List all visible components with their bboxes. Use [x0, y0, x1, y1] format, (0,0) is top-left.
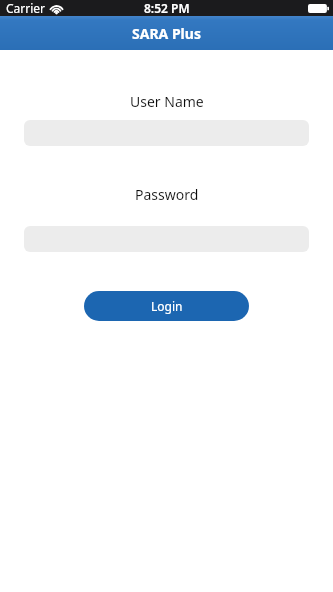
- staticText: SARA Plus: [132, 24, 201, 43]
- staticText: User Name: [130, 92, 204, 111]
- button[interactable]: Login: [84, 291, 249, 321]
- staticText: Carrier: [6, 0, 46, 16]
- staticText: 8:52 PM: [144, 0, 190, 16]
- staticText: Password: [135, 185, 199, 204]
- staticText: Login: [151, 298, 183, 314]
